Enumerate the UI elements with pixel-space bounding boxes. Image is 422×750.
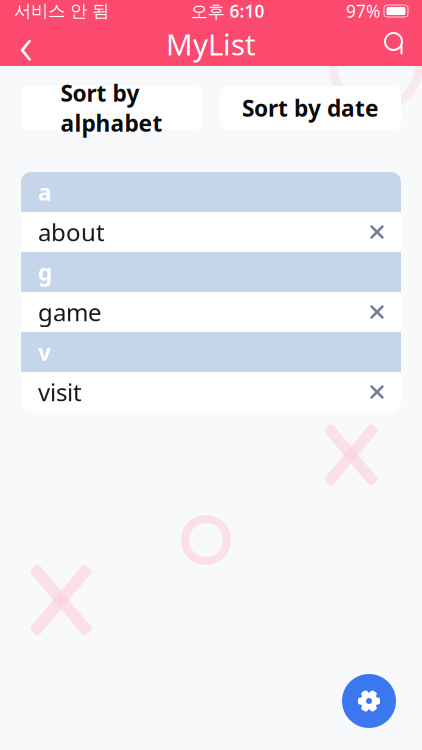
button[interactable]: Search (370, 22, 422, 66)
staticText: g (38, 257, 52, 287)
staticText: Sort by alphabet (60, 78, 162, 138)
staticText: MyList (166, 24, 256, 63)
button[interactable]: Back (0, 22, 52, 66)
staticText: ‹ (19, 9, 33, 79)
button[interactable]: Sort by date (220, 86, 401, 130)
button[interactable]: Delete about (357, 212, 397, 252)
button[interactable]: Sort by alphabet (21, 86, 202, 130)
staticText: about (38, 216, 105, 248)
staticText: v (38, 337, 51, 367)
button[interactable]: Delete visit (357, 372, 397, 412)
staticText: 오후 6:10 (190, 0, 264, 22)
staticText: Sort by date (242, 93, 379, 123)
staticText: 서비스 안 됨 (14, 0, 109, 22)
button[interactable]: Settings (342, 674, 396, 728)
staticText: 97% (346, 0, 380, 22)
staticText: a (38, 177, 52, 207)
staticText: visit (38, 376, 82, 408)
staticText: game (38, 296, 102, 328)
button[interactable]: Delete game (357, 292, 397, 332)
